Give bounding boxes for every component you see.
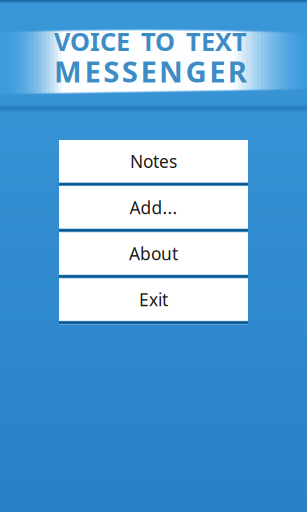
button[interactable]: Notes — [59, 140, 248, 183]
staticText: About — [129, 242, 178, 265]
staticText: Notes — [130, 150, 177, 173]
staticText: VOICE — [54, 24, 130, 58]
staticText: Exit — [139, 288, 168, 311]
button[interactable]: Exit — [59, 278, 248, 321]
staticText: Add... — [129, 196, 177, 219]
button[interactable]: About — [59, 232, 248, 275]
button[interactable]: Add... — [59, 186, 248, 229]
staticText: TO — [141, 24, 175, 58]
staticText: TEXT — [186, 24, 247, 58]
staticText: MESSENGER — [54, 51, 247, 90]
